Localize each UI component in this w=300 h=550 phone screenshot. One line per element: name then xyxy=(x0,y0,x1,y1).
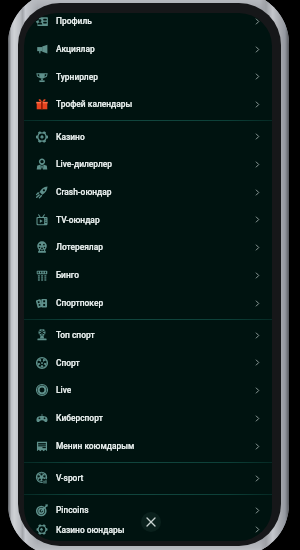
button[interactable]: Бинго xyxy=(24,261,272,289)
button[interactable]: Турнирлер xyxy=(24,63,272,90)
button[interactable]: Топ спорт xyxy=(24,321,272,349)
staticText: Спорт xyxy=(56,358,80,368)
staticText: Казино оюндары xyxy=(56,525,125,535)
button[interactable]: Crash-оюндар xyxy=(24,178,272,206)
staticText: TV-оюндар xyxy=(56,215,100,225)
button[interactable]: Киберспорт xyxy=(24,404,272,432)
staticText: Акциялар xyxy=(56,44,95,54)
staticText: Бинго xyxy=(56,270,79,280)
button[interactable]: Спортпокер xyxy=(24,289,272,317)
button[interactable]: Казино оюндары xyxy=(24,524,272,535)
button[interactable]: Live-дилерлер xyxy=(24,150,272,178)
button[interactable]: Акциялар xyxy=(24,35,272,63)
button[interactable]: Казино xyxy=(24,123,272,150)
button[interactable]: Профиль xyxy=(24,13,272,35)
button[interactable]: Live xyxy=(24,376,272,404)
staticText: Crash-оюндар xyxy=(56,187,112,197)
staticText: Менин коюмдарым xyxy=(56,441,135,451)
button[interactable]: Трофей календары xyxy=(24,90,272,118)
staticText: Live-дилерлер xyxy=(56,159,113,169)
staticText: Pincoins xyxy=(56,505,89,515)
button[interactable]: Спорт xyxy=(24,349,272,376)
button[interactable]: V-sport xyxy=(24,464,272,492)
staticText: Спортпокер xyxy=(56,298,104,308)
staticText: Киберспорт xyxy=(56,413,103,423)
button[interactable]: Менин коюмдарым xyxy=(24,432,272,460)
staticText: Казино xyxy=(56,132,85,142)
staticText: Трофей календары xyxy=(56,99,133,109)
button[interactable]: Pincoins xyxy=(24,496,272,524)
button[interactable]: TV-оюндар xyxy=(24,206,272,233)
staticText: Лотереялар xyxy=(56,242,103,252)
staticText: V-sport xyxy=(56,473,84,483)
button[interactable]: Close xyxy=(141,512,161,532)
button[interactable]: Лотереялар xyxy=(24,233,272,261)
staticText: Live xyxy=(56,385,72,395)
staticText: Турнирлер xyxy=(56,72,98,82)
staticText: Профиль xyxy=(56,16,92,26)
staticText: Топ спорт xyxy=(56,330,95,340)
